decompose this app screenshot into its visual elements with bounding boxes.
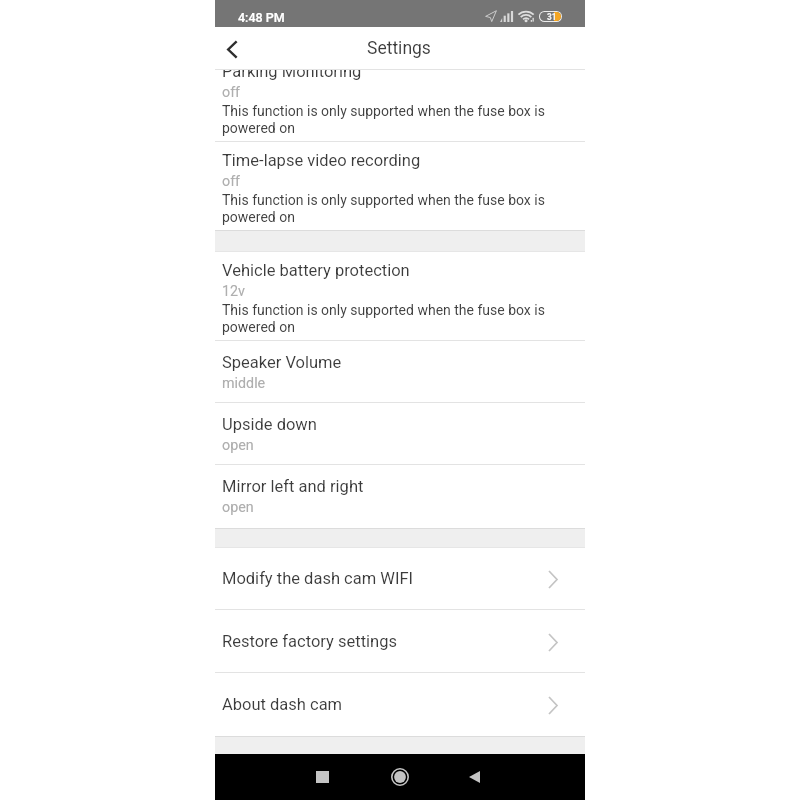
staticText: This function is only supported when the… (222, 103, 564, 137)
button[interactable]: Speaker Volume (215, 341, 585, 402)
button[interactable]: Back (451, 754, 497, 800)
button[interactable]: Vehicle battery protection (215, 252, 585, 340)
staticText: Modify the dash cam WIFI (222, 569, 413, 588)
staticText: 4:48 PM (238, 10, 285, 25)
button[interactable]: Back (215, 27, 257, 69)
button[interactable]: Time-lapse video recording (215, 142, 585, 230)
button[interactable]: Restore factory settings (215, 610, 585, 672)
staticText: open (222, 499, 254, 516)
button[interactable]: Parking Monitoring (215, 53, 585, 141)
staticText: Parking Monitoring (222, 62, 362, 81)
button[interactable]: Home (377, 754, 423, 800)
staticText: Speaker Volume (222, 353, 342, 372)
staticText: This function is only supported when the… (222, 302, 564, 336)
staticText: off (222, 173, 241, 190)
staticText: About dash cam (222, 695, 343, 714)
staticText: 12v (222, 283, 245, 300)
staticText: Vehicle battery protection (222, 261, 410, 280)
button[interactable]: Modify the dash cam WIFI (215, 548, 585, 609)
button[interactable]: Upside down (215, 403, 585, 464)
button[interactable]: About dash cam (215, 673, 585, 736)
staticText: Upside down (222, 415, 317, 434)
staticText: 31 (547, 12, 557, 21)
staticText: off (222, 84, 241, 101)
staticText: Mirror left and right (222, 477, 364, 496)
staticText: open (222, 437, 254, 454)
staticText: This function is only supported when the… (222, 192, 564, 226)
button[interactable]: Recents (299, 754, 345, 800)
button[interactable]: Mirror left and right (215, 465, 585, 528)
staticText: middle (222, 375, 266, 392)
staticText: Time-lapse video recording (222, 151, 421, 170)
staticText: Settings (367, 38, 431, 59)
staticText: Restore factory settings (222, 632, 397, 651)
